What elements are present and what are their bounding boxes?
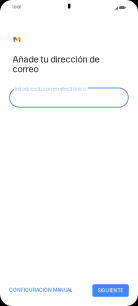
staticText: Añade tu dirección de: [12, 54, 99, 65]
staticText: correo: [12, 64, 38, 74]
staticText: CONFIGURACIÓN MANUAL: [9, 287, 73, 293]
button[interactable]: SIGUIENTE: [92, 284, 129, 297]
staticText: 10:06: [12, 5, 21, 9]
staticText: SIGUIENTE: [98, 288, 124, 293]
staticText: Introduce tu correo electrónico: [15, 86, 86, 92]
button[interactable]: CONFIGURACIÓN MANUAL: [5, 283, 77, 297]
